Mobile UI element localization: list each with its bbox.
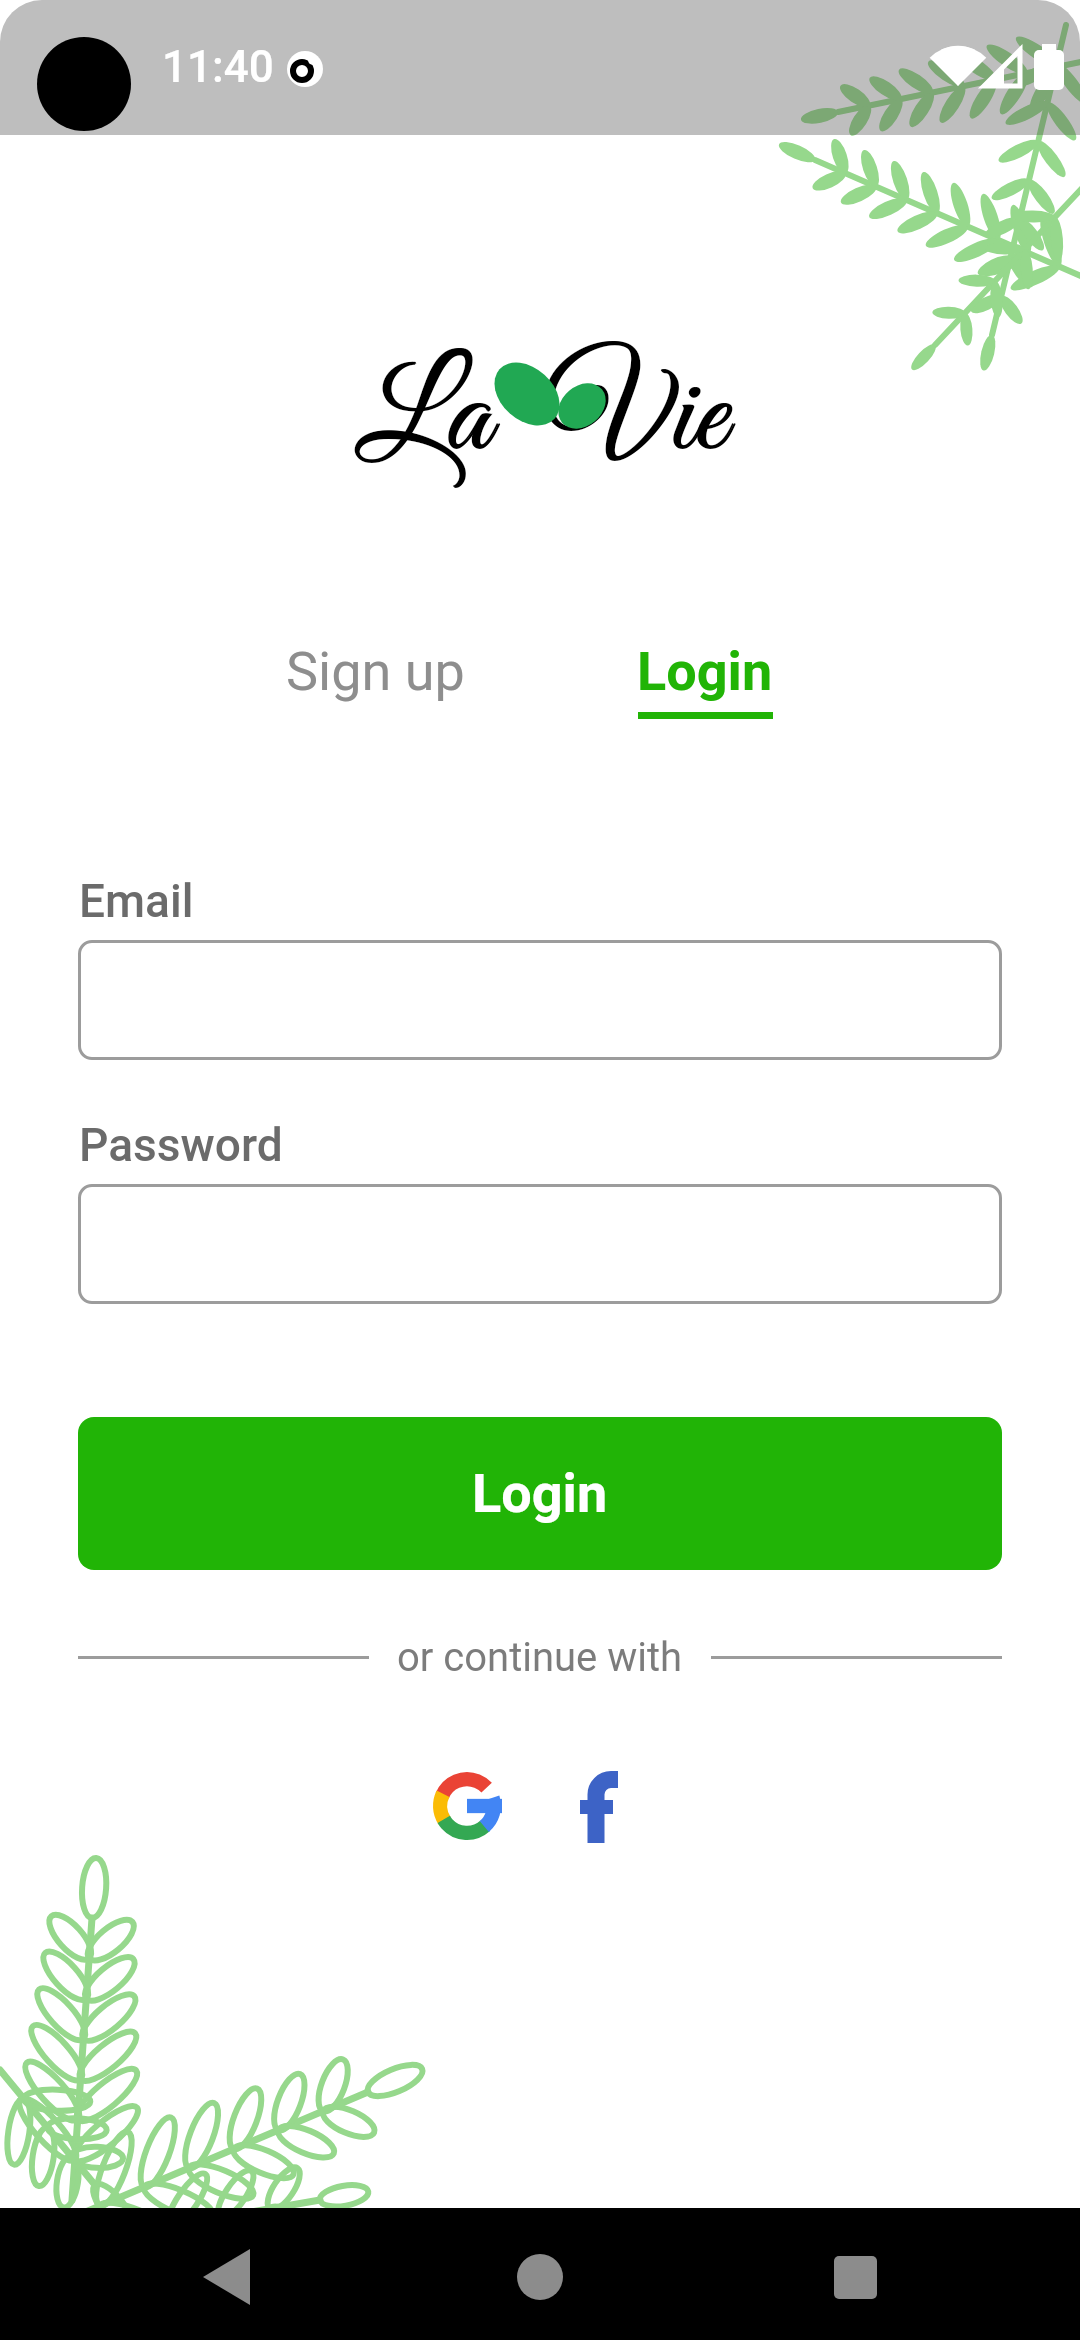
staticText: Password — [79, 1118, 283, 1172]
staticText: Sign up — [286, 640, 465, 703]
staticText: La — [356, 343, 491, 500]
staticText: Login — [637, 640, 773, 703]
staticText: Email — [79, 874, 194, 928]
button[interactable]: Login — [540, 640, 870, 719]
button[interactable] — [78, 1184, 1002, 1304]
staticText: La — [357, 342, 492, 499]
button[interactable] — [564, 1769, 638, 1843]
staticText: or continue with — [397, 1634, 683, 1681]
button[interactable] — [720, 2208, 1080, 2340]
button[interactable] — [78, 940, 1002, 1060]
button[interactable]: Sign up — [210, 640, 540, 703]
button[interactable] — [0, 2208, 360, 2340]
button[interactable] — [360, 2208, 720, 2340]
staticText: Vie — [545, 342, 725, 499]
button[interactable] — [430, 1769, 504, 1843]
staticText: La — [355, 342, 490, 499]
staticText: 11:40 — [162, 41, 274, 93]
staticText: Login — [472, 1462, 608, 1525]
staticText: Vie — [546, 343, 726, 500]
button[interactable]: Login — [78, 1417, 1002, 1570]
staticText: Vie — [547, 342, 727, 499]
